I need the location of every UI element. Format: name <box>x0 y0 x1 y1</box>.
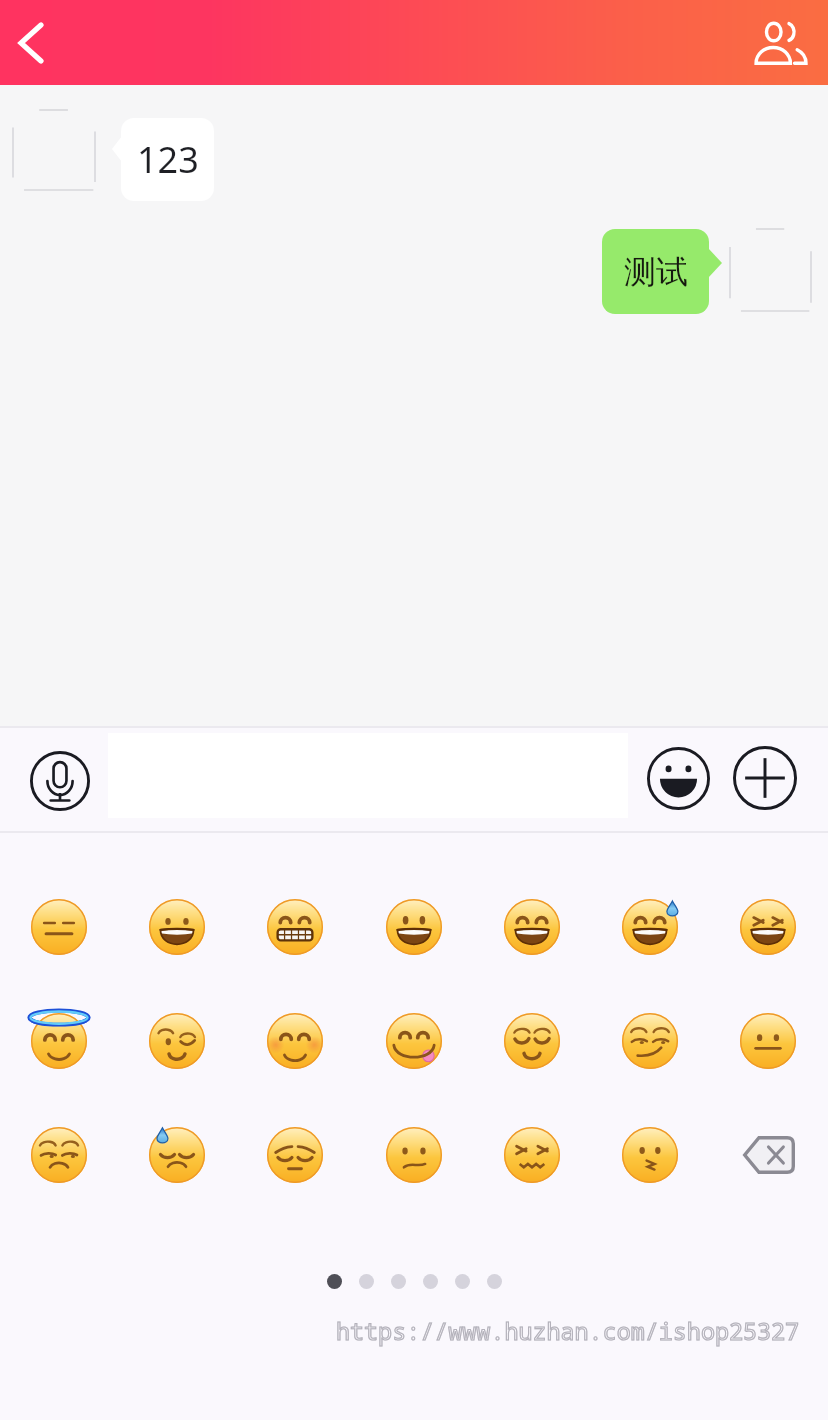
button[interactable]: Backspace <box>728 1115 808 1195</box>
button[interactable]: Voice input <box>18 739 102 823</box>
button[interactable]: Emoji 7 <box>728 887 808 967</box>
button[interactable]: Emoji 9 <box>137 1001 217 1081</box>
button[interactable]: 测试 <box>602 229 709 314</box>
staticText: 123 <box>137 135 199 184</box>
button[interactable]: Emoji 10 <box>255 1001 335 1081</box>
button[interactable]: Emoji 20 <box>610 1115 690 1195</box>
button[interactable]: Emoji 8 <box>19 1001 99 1081</box>
button[interactable]: Emoji 17 <box>255 1115 335 1195</box>
button[interactable]: Back <box>0 12 62 74</box>
button[interactable]: 123 <box>121 118 214 201</box>
button[interactable]: Emoji 1 <box>19 887 99 967</box>
button[interactable]: Emoji 15 <box>19 1115 99 1195</box>
button[interactable]: Emoji 5 <box>492 887 572 967</box>
button[interactable]: Emoji 2 <box>137 887 217 967</box>
button[interactable]: Emoji 12 <box>492 1001 572 1081</box>
button[interactable]: Emoji 6 <box>610 887 690 967</box>
staticText: https://www.huzhan.com/ishop25327 <box>336 1315 800 1347</box>
staticText: 测试 <box>624 252 688 292</box>
button[interactable]: Emoji <box>636 736 720 820</box>
button[interactable]: More <box>723 736 807 820</box>
button[interactable]: Emoji 3 <box>255 887 335 967</box>
button[interactable]: Emoji 11 <box>374 1001 454 1081</box>
button[interactable]: Emoji 4 <box>374 887 454 967</box>
button[interactable]: Emoji 18 <box>374 1115 454 1195</box>
button[interactable]: Emoji 14 <box>728 1001 808 1081</box>
button[interactable]: Emoji 13 <box>610 1001 690 1081</box>
button[interactable]: Emoji 16 <box>137 1115 217 1195</box>
button[interactable]: Emoji 19 <box>492 1115 572 1195</box>
button[interactable]: Group members <box>748 11 812 75</box>
